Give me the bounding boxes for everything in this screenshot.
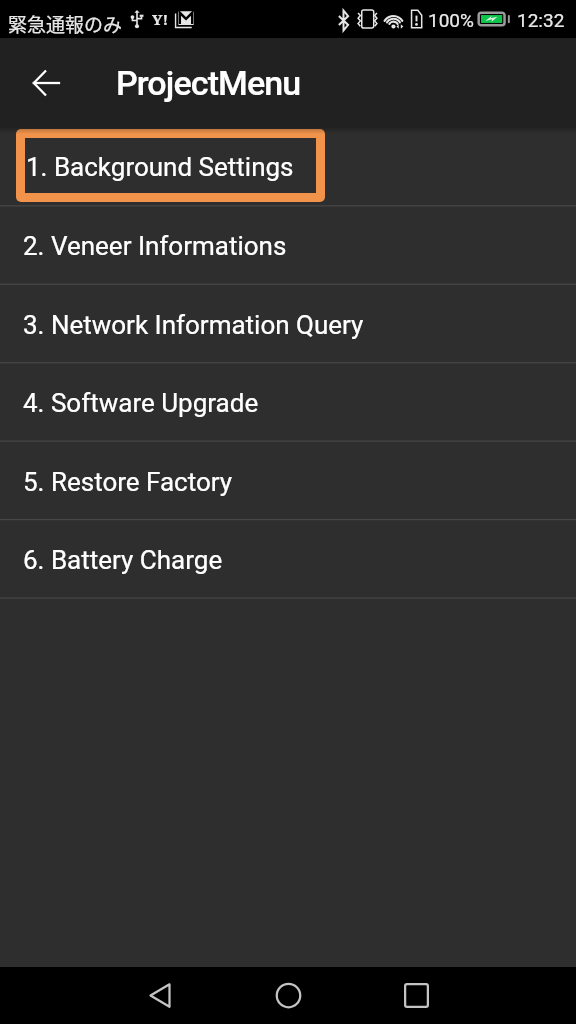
button[interactable]: Recent apps (368, 967, 464, 1023)
staticText: 緊急通報のみ (8, 10, 123, 38)
staticText: 2. Veneer Informations (23, 231, 287, 261)
button[interactable]: Home (240, 967, 336, 1023)
staticText: Y! (152, 9, 169, 29)
staticText: 100% (428, 9, 474, 31)
staticText: 1. Background Settings (26, 152, 294, 182)
button[interactable]: 3. Network Information Query (0, 285, 576, 363)
button[interactable]: 1. Background Settings (0, 128, 576, 206)
staticText: 5. Restore Factory (23, 467, 233, 497)
staticText: 4. Software Upgrade (23, 388, 259, 418)
button[interactable]: 5. Restore Factory (0, 442, 576, 520)
staticText: 3. Network Information Query (23, 310, 364, 340)
button[interactable]: 6. Battery Charge (0, 520, 576, 598)
staticText: 12:32 (517, 9, 565, 31)
staticText: 6. Battery Charge (23, 545, 223, 575)
button[interactable]: 4. Software Upgrade (0, 363, 576, 441)
button[interactable]: 2. Veneer Informations (0, 206, 576, 284)
staticText: ProjectMenu (116, 63, 301, 103)
button[interactable]: Navigate up (14, 38, 77, 128)
button[interactable]: Back (112, 967, 208, 1023)
